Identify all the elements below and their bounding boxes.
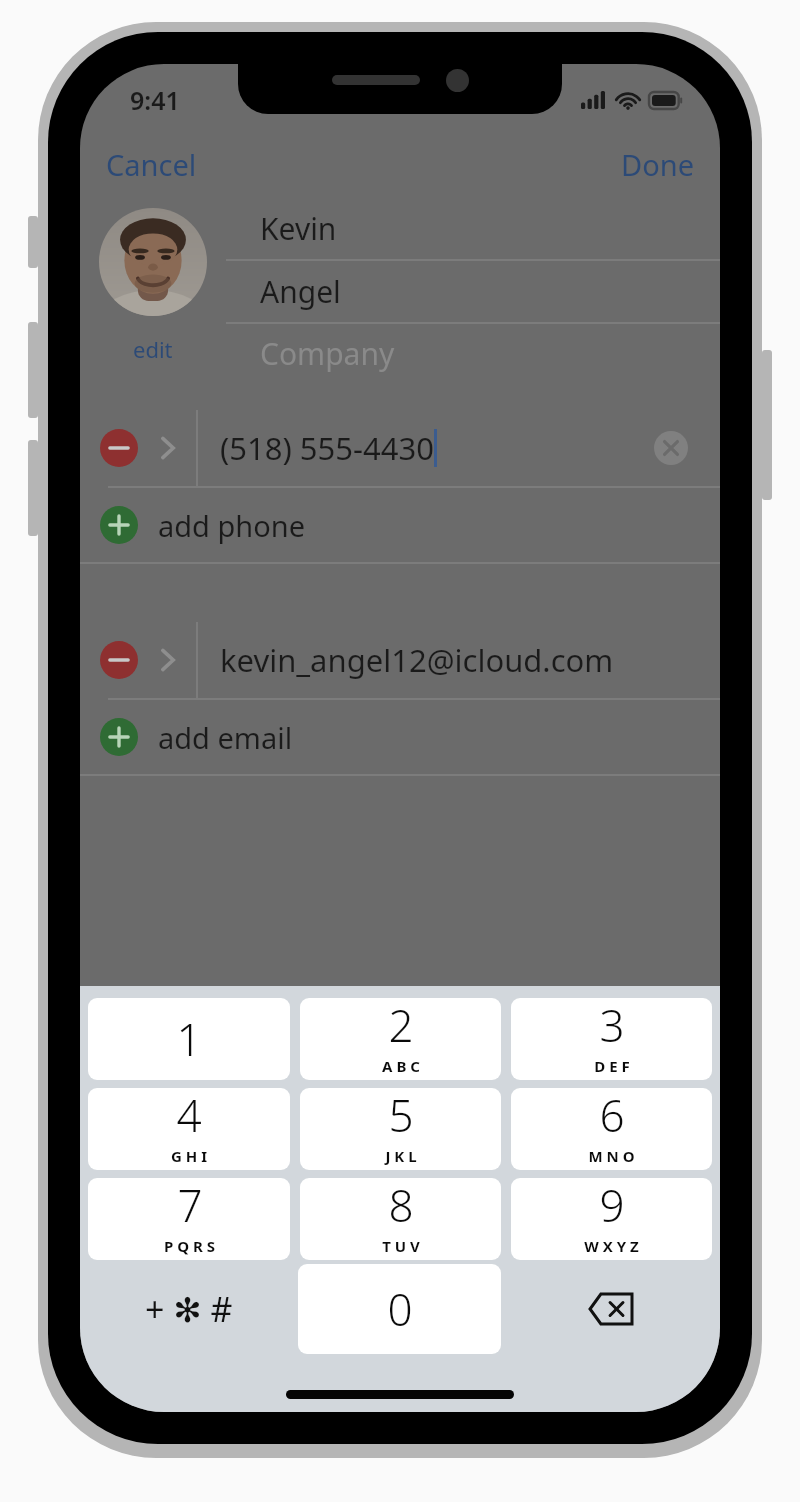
staticText: 4 bbox=[176, 1088, 202, 1145]
button[interactable]: Remove bbox=[80, 410, 720, 486]
staticText: 2 bbox=[388, 998, 414, 1055]
button[interactable]: add email bbox=[80, 700, 720, 774]
button[interactable]: 6 bbox=[511, 1088, 712, 1170]
staticText: 9 bbox=[599, 1178, 625, 1235]
button[interactable]: 7 bbox=[88, 1178, 290, 1260]
staticText: add email bbox=[158, 718, 293, 757]
button[interactable]: Delete bbox=[509, 1264, 712, 1354]
staticText: A B C bbox=[382, 1056, 420, 1076]
staticText: J K L bbox=[385, 1146, 417, 1166]
button[interactable]: Remove bbox=[98, 639, 140, 681]
staticText: Cancel bbox=[106, 145, 197, 184]
staticText: G H I bbox=[171, 1146, 207, 1166]
button[interactable]: Company bbox=[226, 324, 720, 382]
button[interactable]: edit bbox=[121, 330, 185, 368]
staticText: P Q R S bbox=[164, 1236, 215, 1256]
button[interactable]: Kevin bbox=[226, 198, 720, 259]
staticText: + ✻ # bbox=[145, 1286, 233, 1332]
button[interactable]: Symbols bbox=[88, 1264, 290, 1354]
staticText: 0 bbox=[387, 1279, 413, 1339]
button[interactable]: 4 bbox=[88, 1088, 290, 1170]
staticText: 5 bbox=[388, 1088, 414, 1145]
button[interactable]: Angel bbox=[226, 261, 720, 322]
staticText: add phone bbox=[158, 506, 306, 545]
button[interactable]: Done bbox=[595, 137, 720, 192]
button[interactable]: Remove bbox=[80, 622, 720, 698]
staticText: 3 bbox=[599, 998, 625, 1055]
button[interactable]: 5 bbox=[300, 1088, 501, 1170]
button[interactable]: add phone bbox=[80, 488, 720, 562]
staticText: T U V bbox=[382, 1236, 420, 1256]
button[interactable]: Remove bbox=[98, 427, 140, 469]
button[interactable]: 8 bbox=[300, 1178, 501, 1260]
staticText: Done bbox=[621, 145, 694, 184]
button[interactable]: 0 bbox=[298, 1264, 501, 1354]
staticText: 6 bbox=[599, 1088, 625, 1145]
staticText: 1 bbox=[176, 1009, 202, 1069]
button[interactable]: Clear text bbox=[654, 431, 688, 465]
button[interactable]: 9 bbox=[511, 1178, 712, 1260]
staticText: D E F bbox=[594, 1056, 630, 1076]
staticText: Company bbox=[260, 333, 395, 374]
staticText: W X Y Z bbox=[584, 1236, 639, 1256]
staticText: 8 bbox=[388, 1178, 414, 1235]
staticText: kevin_angel12@icloud.com bbox=[220, 639, 614, 681]
staticText: Angel bbox=[260, 271, 341, 312]
staticText: M N O bbox=[588, 1146, 635, 1166]
button[interactable]: Cancel bbox=[80, 137, 223, 192]
staticText: 9:41 bbox=[130, 83, 180, 117]
button[interactable]: 2 bbox=[300, 998, 501, 1080]
staticText: Kevin bbox=[260, 208, 337, 249]
staticText: (518) 555-4430 bbox=[220, 427, 434, 469]
staticText: edit bbox=[133, 334, 173, 364]
button[interactable]: 3 bbox=[511, 998, 712, 1080]
staticText: 7 bbox=[177, 1178, 203, 1235]
button[interactable]: 1 bbox=[88, 998, 290, 1080]
